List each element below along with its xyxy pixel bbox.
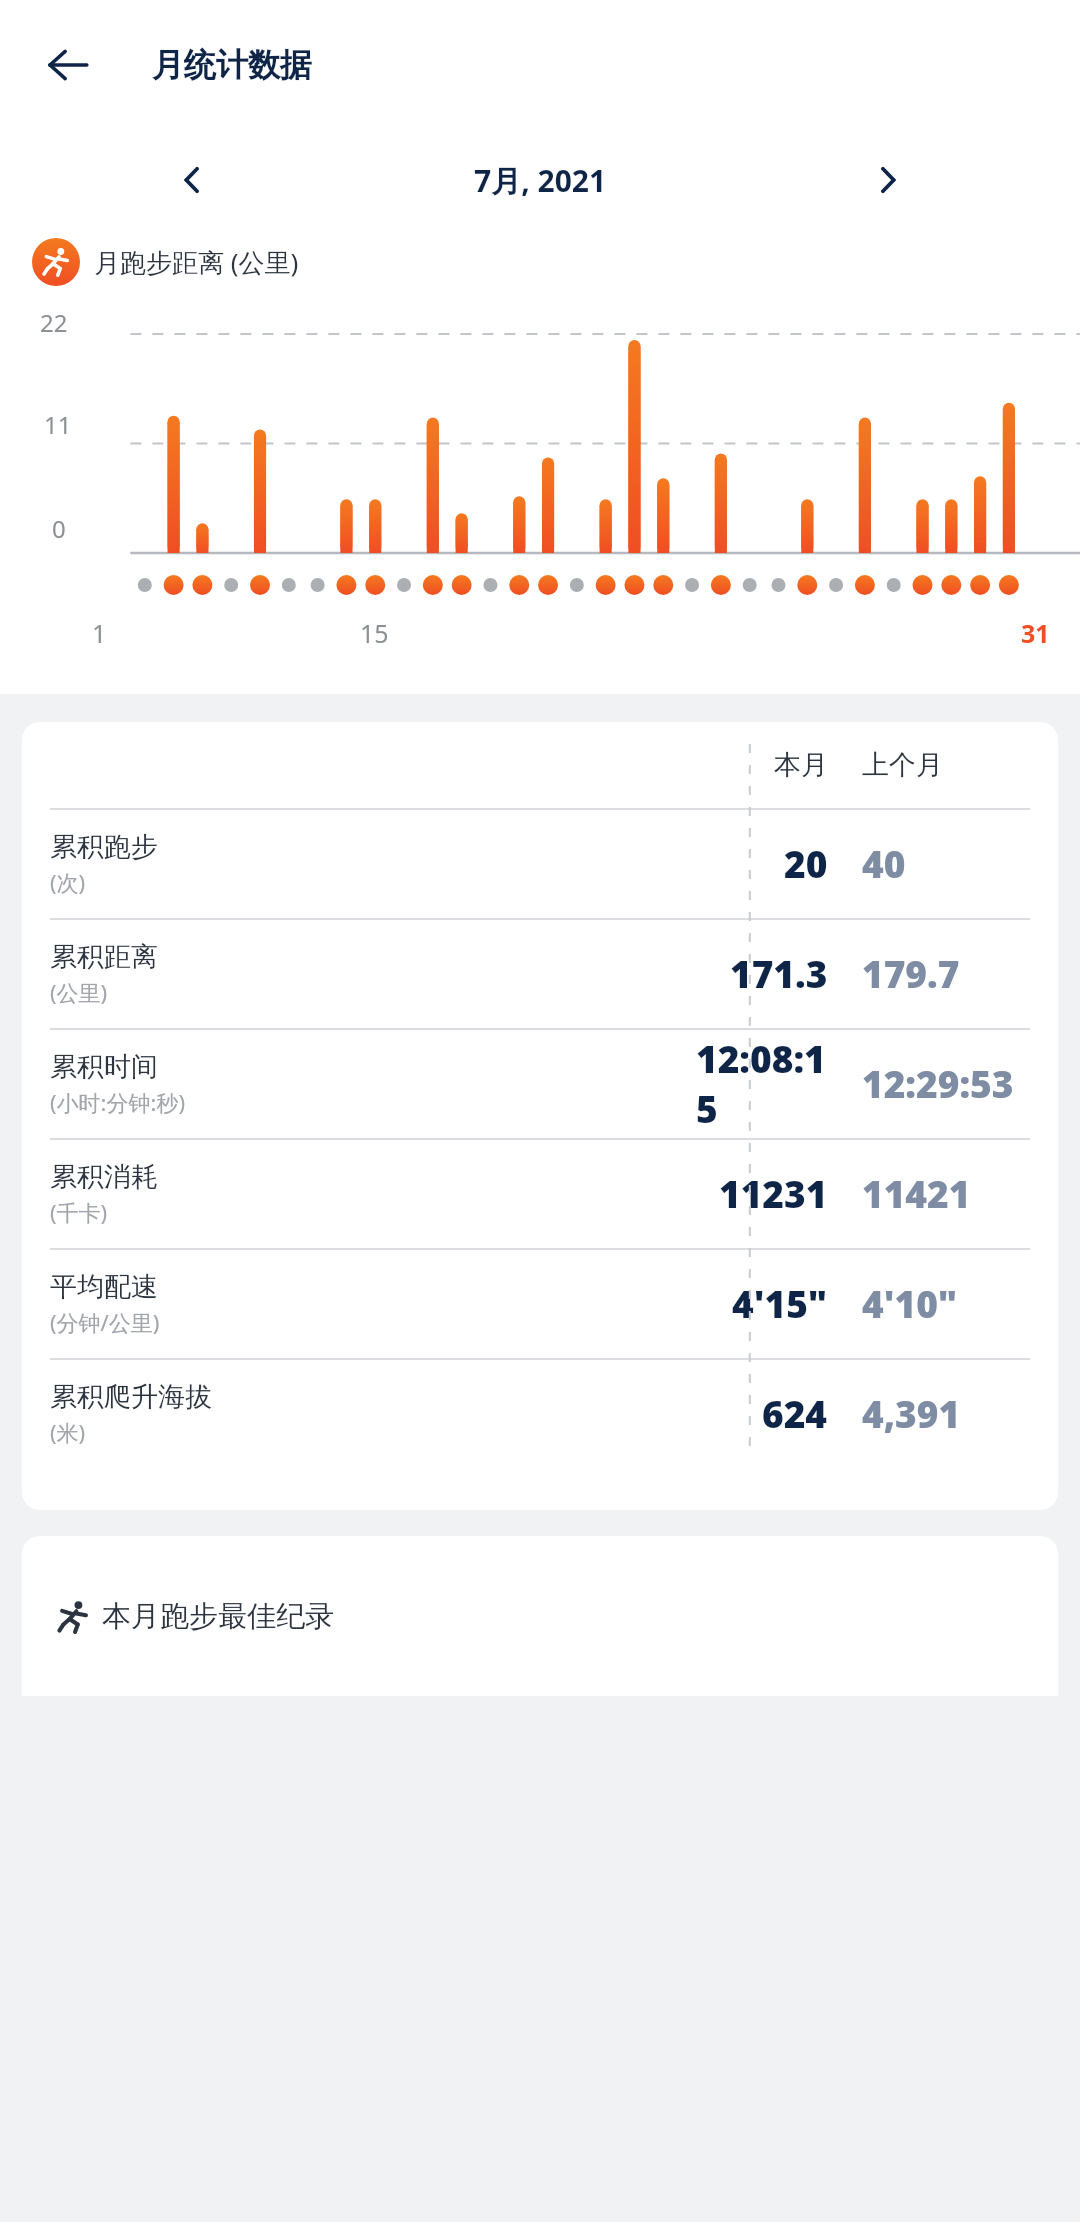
staticText: 11231 [719,1168,828,1218]
staticText: 4,391 [862,1388,961,1438]
button[interactable]: 累积跑步 [22,808,1058,918]
staticText: 4'10" [862,1278,958,1328]
staticText: 40 [862,838,906,888]
staticText: 31 [1021,616,1050,650]
staticText: 月跑步距离 (公里) [94,244,299,280]
staticText: 上个月 [862,748,943,782]
staticText: 12:29:53 [862,1058,1014,1108]
staticText: 累积时间 [50,1050,158,1084]
staticText: 本月跑步最佳纪录 [102,1598,334,1635]
staticText: 20 [784,838,828,888]
staticText: 624 [762,1388,828,1438]
staticText: 本月 [774,748,828,782]
staticText: 4'15" [732,1278,828,1328]
staticText: 1 [92,616,107,650]
button[interactable]: 累积消耗 [22,1138,1058,1248]
staticText: (次) [50,867,86,897]
staticText: 累积距离 [50,940,158,974]
button[interactable]: 累积时间 [22,1028,1058,1138]
staticText: 累积爬升海拔 [50,1380,212,1414]
staticText: 7月, 2021 [474,160,607,201]
button[interactable]: Next month [856,148,920,212]
button[interactable]: 累积爬升海拔 [22,1358,1058,1468]
staticText: (小时:分钟:秒) [50,1087,185,1117]
button[interactable]: 累积距离 [22,918,1058,1028]
staticText: 22 [40,306,68,339]
button[interactable]: Previous month [160,148,224,212]
staticText: 平均配速 [50,1270,158,1304]
staticText: 0 [52,512,66,545]
button[interactable]: 平均配速 [22,1248,1058,1358]
staticText: (公里) [50,977,108,1007]
staticText: 累积消耗 [50,1160,158,1194]
staticText: (千卡) [50,1197,108,1227]
staticText: 月统计数据 [152,45,312,85]
staticText: 171.3 [730,948,828,998]
staticText: 累积跑步 [50,830,158,864]
staticText: (分钟/公里) [50,1307,160,1337]
staticText: 12:08:15 [696,1033,828,1133]
staticText: 11 [44,408,72,441]
staticText: 15 [360,616,389,650]
staticText: (米) [50,1417,86,1447]
button[interactable]: Back [32,29,104,101]
staticText: 11421 [862,1168,971,1218]
staticText: 179.7 [862,948,960,998]
